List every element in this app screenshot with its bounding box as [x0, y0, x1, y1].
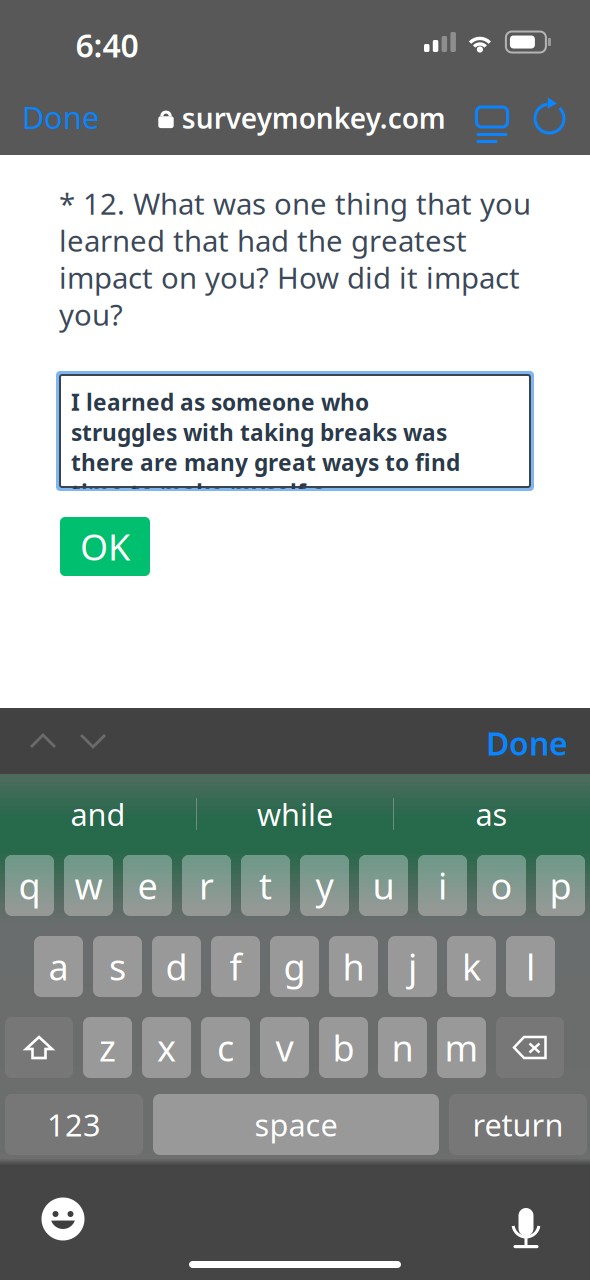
button[interactable]: w [64, 855, 113, 916]
staticText: 6:40 [75, 24, 138, 66]
button[interactable]: r [182, 855, 231, 916]
button[interactable]: k [447, 936, 496, 997]
button[interactable]: p [536, 855, 585, 916]
staticText: Done [486, 722, 568, 764]
button[interactable]: e [123, 855, 172, 916]
staticText: d [165, 943, 187, 990]
button[interactable]: Shift [5, 1017, 73, 1078]
button[interactable]: m [437, 1017, 486, 1078]
staticText: i [438, 862, 447, 909]
button[interactable]: Delete [496, 1017, 564, 1078]
button[interactable]: g [270, 936, 319, 997]
button[interactable]: a [34, 936, 83, 997]
button[interactable]: f [211, 936, 260, 997]
staticText: x [157, 1024, 176, 1071]
button[interactable]: v [260, 1017, 309, 1078]
staticText: t [259, 862, 272, 909]
button[interactable]: Reader view [465, 88, 519, 146]
staticText: u [372, 862, 394, 909]
button[interactable]: y [300, 855, 349, 916]
button[interactable]: o [477, 855, 526, 916]
button[interactable]: z [83, 1017, 132, 1078]
button[interactable]: c [201, 1017, 250, 1078]
button[interactable]: and [0, 780, 196, 848]
button[interactable]: j [388, 936, 437, 997]
staticText: b [332, 1024, 354, 1071]
button[interactable]: Dictation [498, 1196, 554, 1252]
staticText: struggles with taking breaks was [71, 417, 447, 447]
staticText: surveymonkey.com [182, 99, 446, 137]
staticText: z [99, 1024, 116, 1071]
staticText: g [283, 943, 305, 990]
button[interactable]: h [329, 936, 378, 997]
button[interactable]: return [449, 1094, 587, 1155]
staticText: o [490, 862, 512, 909]
button[interactable]: u [359, 855, 408, 916]
staticText: return [472, 1104, 563, 1145]
staticText: * 12. What was one thing that you [59, 184, 531, 223]
button[interactable]: while [197, 780, 393, 848]
staticText: w [74, 862, 102, 909]
staticText: p [549, 862, 571, 909]
button[interactable]: 123 [5, 1094, 143, 1155]
staticText: time to make myself a [71, 477, 326, 507]
button[interactable]: Reload [523, 88, 577, 146]
button[interactable]: d [152, 936, 201, 997]
staticText: n [391, 1024, 413, 1071]
staticText: y [315, 862, 333, 909]
button[interactable]: t [241, 855, 290, 916]
button[interactable]: i [418, 855, 467, 916]
staticText: learned that had the greatest [59, 221, 467, 260]
button[interactable]: n [378, 1017, 427, 1078]
button[interactable]: OK [60, 517, 150, 576]
button[interactable]: Previous field [18, 716, 68, 766]
staticText: e [137, 862, 157, 909]
staticText: you? [59, 295, 123, 334]
staticText: m [444, 1024, 478, 1071]
button[interactable]: Done [448, 718, 568, 768]
staticText: space [254, 1104, 337, 1145]
button[interactable]: Done [0, 88, 114, 146]
staticText: c [217, 1024, 234, 1071]
button[interactable]: q [5, 855, 54, 916]
button[interactable]: Next field [68, 716, 118, 766]
button[interactable]: as [394, 780, 589, 848]
button[interactable]: x [142, 1017, 191, 1078]
staticText: Done [22, 97, 99, 137]
staticText: r [199, 862, 214, 909]
staticText: q [18, 862, 40, 909]
staticText: l [526, 943, 535, 990]
staticText: f [229, 943, 241, 990]
staticText: a [48, 943, 68, 990]
staticText: and [70, 794, 125, 834]
staticText: while [257, 794, 333, 834]
button[interactable]: space [153, 1094, 439, 1155]
staticText: v [275, 1024, 293, 1071]
staticText: as [475, 794, 507, 834]
staticText: I learned as someone who [71, 387, 369, 417]
staticText: OK [80, 523, 130, 570]
staticText: k [462, 943, 481, 990]
button[interactable]: Emoji keyboard [35, 1191, 91, 1247]
button[interactable]: s [93, 936, 142, 997]
staticText: h [342, 943, 364, 990]
staticText: j [408, 943, 417, 990]
staticText: there are many great ways to find [71, 447, 460, 477]
staticText: 123 [47, 1104, 101, 1145]
button[interactable]: b [319, 1017, 368, 1078]
staticText: impact on you? How did it impact [59, 258, 520, 297]
button[interactable]: l [506, 936, 555, 997]
staticText: s [109, 943, 126, 990]
